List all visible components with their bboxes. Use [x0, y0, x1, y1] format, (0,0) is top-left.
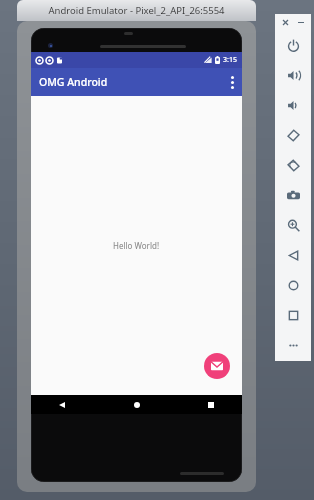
- staticText: Hello World!: [113, 240, 160, 251]
- button[interactable]: Send email: [204, 353, 230, 379]
- staticText: Android Emulator - Pixel_2_API_26:5554: [48, 4, 225, 17]
- button[interactable]: Rotate right: [275, 150, 311, 180]
- button[interactable]: Zoom: [275, 210, 311, 240]
- button[interactable]: Overview: [275, 300, 311, 330]
- staticText: 3:15: [223, 55, 237, 65]
- button[interactable]: Take screenshot: [275, 180, 311, 210]
- button[interactable]: Volume down: [275, 90, 311, 120]
- button[interactable]: Recent apps: [202, 396, 220, 414]
- button[interactable]: Home: [275, 270, 311, 300]
- button[interactable]: Minimize: [295, 16, 307, 28]
- button[interactable]: More options: [223, 70, 242, 95]
- button[interactable]: Back: [275, 240, 311, 270]
- button[interactable]: Rotate left: [275, 120, 311, 150]
- button[interactable]: Power: [275, 30, 311, 60]
- button[interactable]: Home: [128, 396, 146, 414]
- button[interactable]: More: [275, 330, 311, 360]
- button[interactable]: Back: [53, 396, 71, 414]
- button[interactable]: Close: [279, 16, 291, 28]
- staticText: OMG Android: [39, 75, 108, 89]
- button[interactable]: Volume up: [275, 60, 311, 90]
